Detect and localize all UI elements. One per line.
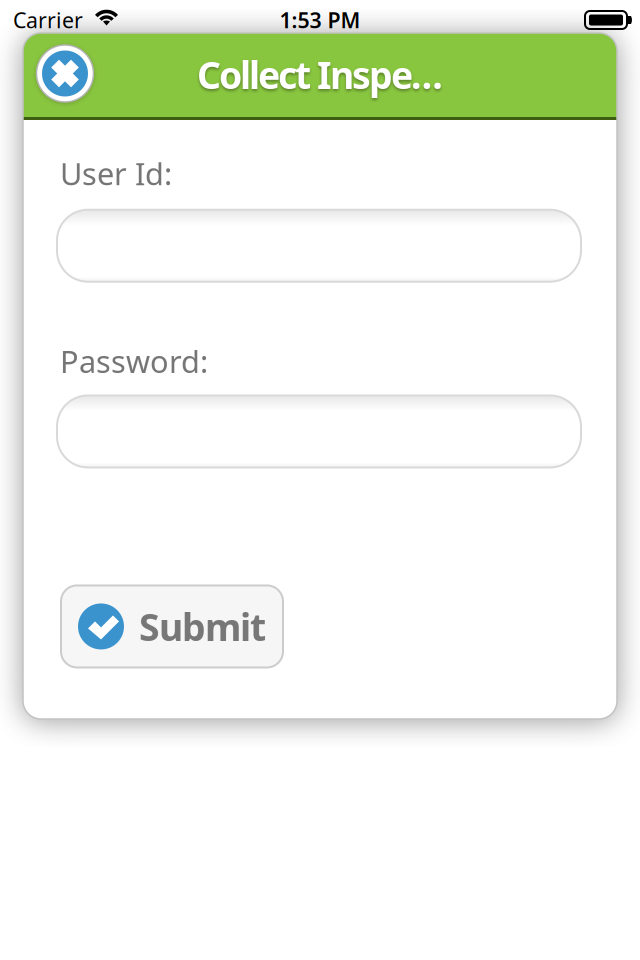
button[interactable]: User Id	[57, 210, 581, 282]
staticText: Submit	[139, 602, 266, 651]
staticText: Password:	[60, 341, 208, 381]
staticText: Carrier	[13, 6, 83, 34]
staticText: Collect Inspe…	[197, 50, 443, 99]
button[interactable]: Password	[57, 395, 581, 467]
button[interactable]: Submit	[61, 585, 283, 667]
button[interactable]: Close	[36, 44, 94, 102]
staticText: User Id:	[60, 153, 172, 194]
staticText: 1:53 PM	[279, 6, 360, 34]
